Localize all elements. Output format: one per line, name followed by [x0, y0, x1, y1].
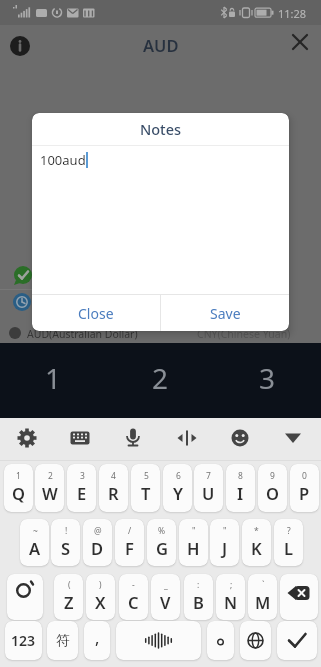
staticText: 11:28	[278, 6, 307, 21]
staticText: 3	[80, 470, 85, 482]
button[interactable]: %	[147, 519, 176, 566]
staticText: ~	[33, 525, 38, 537]
staticText: R	[108, 482, 119, 504]
button[interactable]: 1	[0, 343, 107, 418]
button[interactable]: )	[86, 574, 115, 620]
button[interactable]	[63, 423, 97, 453]
button[interactable]	[223, 423, 257, 453]
button[interactable]: "	[179, 519, 208, 566]
button[interactable]	[207, 621, 234, 660]
staticText: Q	[12, 482, 25, 504]
button[interactable]	[240, 621, 271, 660]
staticText: CNY(Chinese Yuan)	[197, 327, 291, 341]
staticText: -	[132, 579, 135, 591]
button[interactable]: 6	[163, 464, 192, 512]
staticText: 6	[176, 470, 181, 482]
staticText: ;	[230, 579, 233, 591]
button[interactable]: -	[119, 574, 148, 620]
staticText: U	[202, 482, 215, 504]
button[interactable]: 2	[35, 464, 64, 512]
staticText: A	[29, 537, 41, 559]
staticText: ,	[95, 627, 100, 649]
staticText: P	[299, 482, 310, 504]
button[interactable]: 5	[131, 464, 160, 512]
button[interactable]: ~	[20, 519, 49, 566]
staticText: B	[193, 591, 204, 613]
button[interactable]	[116, 423, 150, 453]
staticText: 9	[270, 470, 275, 482]
staticText: 3	[259, 359, 276, 397]
staticText: T	[141, 482, 151, 504]
button[interactable]: 4	[99, 464, 128, 512]
button[interactable]	[10, 423, 44, 453]
staticText: 4	[111, 470, 116, 482]
staticText: "	[192, 525, 196, 537]
button[interactable]: "	[210, 519, 239, 566]
button[interactable]: 7	[194, 464, 223, 512]
button[interactable]: Save	[161, 295, 289, 331]
button[interactable]: *	[242, 519, 271, 566]
button[interactable]: 符	[47, 621, 78, 660]
staticText: X	[95, 591, 106, 613]
button[interactable]: 0	[290, 464, 319, 512]
button[interactable]: ;	[216, 574, 245, 620]
staticText: 123	[11, 631, 36, 650]
staticText: 8	[238, 470, 243, 482]
staticText: L	[284, 537, 294, 559]
staticText: D	[91, 537, 104, 559]
staticText: Y	[173, 482, 183, 504]
button[interactable]: ?	[274, 519, 303, 566]
button[interactable]: 1	[4, 464, 33, 512]
button[interactable]: `	[248, 574, 277, 620]
staticText: H	[187, 537, 200, 559]
button[interactable]: Close	[32, 295, 160, 331]
button[interactable]	[116, 621, 201, 660]
staticText: O	[266, 482, 279, 504]
button[interactable]: /	[115, 519, 144, 566]
button[interactable]: 2	[107, 343, 214, 418]
staticText: Z	[64, 591, 74, 613]
staticText: @	[94, 525, 102, 537]
staticText: )	[99, 579, 102, 591]
staticText: 1	[45, 359, 62, 397]
staticText: C	[128, 591, 139, 613]
staticText: 1	[16, 470, 21, 482]
button[interactable]: (	[54, 574, 83, 620]
staticText: `	[262, 579, 265, 591]
staticText: I	[237, 482, 244, 504]
staticText: :	[197, 579, 200, 591]
staticText: 100aud	[40, 151, 86, 169]
button[interactable]	[280, 574, 318, 620]
staticText: M	[255, 591, 271, 613]
staticText: Save	[210, 304, 241, 323]
button[interactable]: 123	[5, 621, 42, 660]
button[interactable]	[7, 574, 43, 620]
button[interactable]	[6, 32, 34, 60]
button[interactable]: 3	[214, 343, 321, 418]
staticText: K	[251, 537, 262, 559]
staticText: (	[68, 579, 71, 591]
button[interactable]	[284, 26, 316, 58]
button[interactable]: _	[151, 574, 180, 620]
button[interactable]: 9	[258, 464, 287, 512]
button[interactable]: !	[51, 519, 80, 566]
button[interactable]: :	[184, 574, 213, 620]
staticText: W	[42, 482, 58, 504]
button[interactable]	[276, 423, 310, 453]
button[interactable]: @	[83, 519, 112, 566]
staticText: N	[224, 591, 238, 613]
button[interactable]	[277, 621, 317, 660]
staticText: 符	[56, 632, 70, 649]
staticText: 2	[152, 359, 169, 397]
button[interactable]: ,	[84, 621, 110, 660]
button[interactable]: 8	[226, 464, 255, 512]
staticText: ?	[287, 525, 291, 537]
button[interactable]	[170, 423, 204, 453]
staticText: F	[125, 537, 134, 559]
staticText: 7	[206, 470, 211, 482]
staticText: AUD	[143, 34, 179, 56]
staticText: 0	[302, 470, 307, 482]
staticText: !	[65, 525, 68, 537]
staticText: /	[128, 525, 132, 537]
button[interactable]: 3	[67, 464, 96, 512]
